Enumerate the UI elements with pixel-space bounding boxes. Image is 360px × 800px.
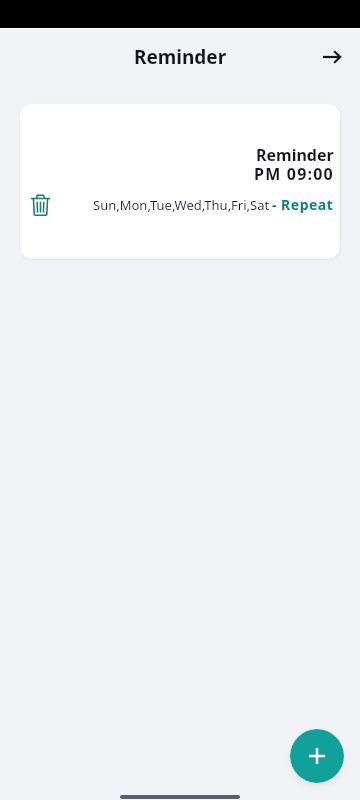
staticText: Reminder	[256, 144, 334, 166]
staticText: - Repeat	[272, 195, 334, 214]
staticText: Reminder	[134, 44, 227, 70]
button[interactable]: Reminder	[20, 104, 340, 259]
button[interactable]: Delete reminder	[20, 185, 60, 225]
button[interactable]: Add reminder	[290, 729, 344, 783]
button[interactable]: Go	[312, 37, 352, 77]
staticText: Sun,Mon,Tue,Wed,Thu,Fri,Sat	[93, 196, 270, 214]
staticText: PM 09:00	[254, 163, 334, 185]
